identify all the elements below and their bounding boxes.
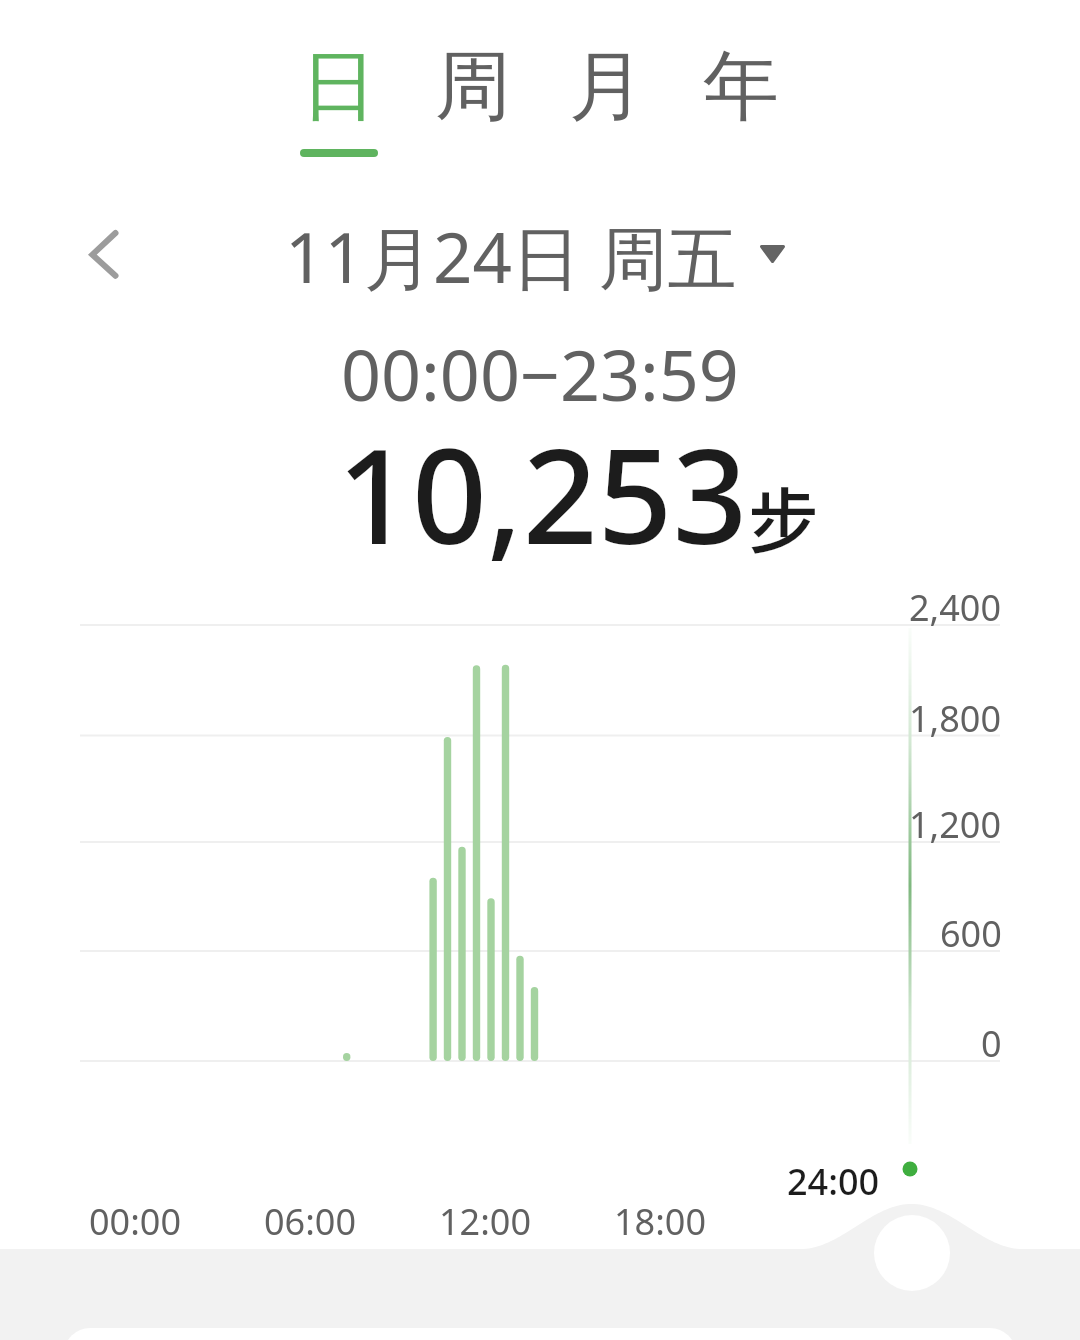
staticText: 06:00 xyxy=(264,1197,357,1246)
staticText: 1,200 xyxy=(909,800,1002,849)
button[interactable]: 11月24日 周五 xyxy=(285,209,785,299)
staticText: 10,253 xyxy=(337,404,748,582)
button[interactable]: 年 xyxy=(674,39,808,174)
staticText: 月 xyxy=(569,39,645,135)
staticText: 年 xyxy=(703,39,779,135)
staticText: 00:00 xyxy=(89,1197,182,1246)
button[interactable]: 月 xyxy=(540,39,674,174)
staticText: 11月24日 周五 xyxy=(285,209,737,299)
staticText: 00:00−23:59 xyxy=(341,326,739,421)
staticText: 24:00 xyxy=(787,1157,880,1206)
button[interactable]: Add record xyxy=(874,1215,950,1291)
button[interactable]: Previous day xyxy=(59,209,149,299)
staticText: 2,400 xyxy=(909,583,1002,632)
staticText: 步 xyxy=(748,465,820,568)
staticText: 600 xyxy=(940,909,1002,958)
staticText: 周 xyxy=(435,39,511,135)
staticText: 0 xyxy=(981,1019,1002,1068)
button[interactable]: Profile xyxy=(810,1249,1080,1329)
button[interactable]: 周 xyxy=(406,39,540,174)
staticText: 1,800 xyxy=(909,694,1002,743)
button[interactable]: 日 xyxy=(272,39,406,174)
staticText: 18:00 xyxy=(614,1197,707,1246)
staticText: 日 xyxy=(301,39,377,135)
staticText: 12:00 xyxy=(439,1197,532,1246)
